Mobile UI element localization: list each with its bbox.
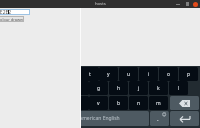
button[interactable]: colour drawer <box>0 16 24 22</box>
button[interactable]: i <box>139 67 158 81</box>
staticText: h <box>117 85 121 92</box>
staticText: k <box>157 85 160 92</box>
button[interactable]: #E2E2E2 <box>0 9 30 15</box>
staticText: colour drawer <box>0 17 24 22</box>
staticText: o <box>167 71 171 78</box>
button[interactable]: b <box>109 96 128 110</box>
button[interactable]: Minimize <box>173 0 182 8</box>
button[interactable]: t <box>81 67 99 81</box>
button[interactable]: h <box>109 81 128 95</box>
button[interactable]: American English <box>81 111 149 126</box>
button[interactable]: m <box>149 96 168 110</box>
button[interactable]: j <box>129 81 148 95</box>
button[interactable]: n <box>129 96 148 110</box>
staticText: v <box>97 100 100 107</box>
button[interactable]: g <box>89 81 108 95</box>
button[interactable]: backspace <box>170 96 199 110</box>
staticText: m <box>156 100 161 107</box>
button[interactable]: l <box>169 81 188 95</box>
staticText: . <box>157 115 159 123</box>
button[interactable]: enter <box>170 111 199 126</box>
button[interactable]: k <box>149 81 168 95</box>
button[interactable]: Close <box>191 0 200 8</box>
staticText: hosts <box>95 1 106 7</box>
button[interactable]: v <box>89 96 108 110</box>
staticText: n <box>137 100 141 107</box>
staticText: #E2E2E2 <box>0 9 12 15</box>
staticText: u <box>127 71 131 78</box>
staticText: j <box>138 85 140 92</box>
staticText: ☺ <box>162 112 167 117</box>
staticText: g <box>97 85 101 92</box>
staticText: l <box>178 85 180 92</box>
button[interactable]: u <box>119 67 138 81</box>
staticText: i <box>148 71 150 78</box>
staticText: p <box>187 71 191 78</box>
staticText: American English <box>81 115 120 122</box>
button[interactable]: o <box>159 67 178 81</box>
button[interactable]: Maximize <box>183 0 192 8</box>
staticText: y <box>107 71 110 78</box>
button[interactable]: p <box>179 67 198 81</box>
button[interactable]: period <box>150 111 169 126</box>
staticText: b <box>117 100 121 107</box>
button[interactable]: y <box>99 67 118 81</box>
staticText: t <box>89 71 91 78</box>
